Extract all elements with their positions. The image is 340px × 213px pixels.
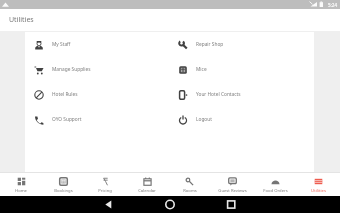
staticText: Your Hotel Contacts: [196, 91, 241, 98]
button[interactable]: Manage Supplies: [25, 57, 169, 82]
button[interactable]: Mice: [169, 57, 314, 82]
button[interactable]: Home: [0, 173, 42, 196]
staticText: Bookings: [54, 188, 73, 194]
button[interactable]: Repair Shop: [169, 32, 314, 57]
button[interactable]: Logout: [169, 107, 314, 132]
button[interactable]: Guest Reviews: [211, 173, 254, 196]
button[interactable]: Your Hotel Contacts: [169, 82, 314, 107]
button[interactable]: Utilities: [297, 173, 340, 196]
staticText: Pricing: [98, 188, 112, 194]
staticText: Manage Supplies: [52, 66, 91, 73]
staticText: Home: [15, 188, 27, 194]
staticText: Utilities: [311, 188, 326, 194]
staticText: Guest Reviews: [218, 188, 247, 194]
staticText: My Staff: [52, 41, 71, 48]
button[interactable]: Bookings: [42, 173, 84, 196]
staticText: 5:24: [328, 2, 338, 8]
button[interactable]: Hotel Rules: [25, 82, 169, 107]
button[interactable]: Food Orders: [254, 173, 297, 196]
button[interactable]: OYO Support: [25, 107, 169, 132]
staticText: OYO Support: [52, 116, 82, 123]
staticText: Rooms: [183, 188, 197, 194]
button[interactable]: Pricing: [84, 173, 126, 196]
button[interactable]: Calendar: [126, 173, 168, 196]
staticText: Hotel Rules: [52, 91, 78, 98]
staticText: Logout: [196, 116, 212, 123]
staticText: Utilities: [9, 15, 34, 25]
button[interactable]: My Staff: [25, 32, 169, 57]
staticText: Repair Shop: [196, 41, 224, 48]
staticText: Mice: [196, 66, 207, 73]
staticText: Calendar: [138, 188, 156, 194]
staticText: Food Orders: [263, 188, 288, 194]
button[interactable]: Rooms: [168, 173, 211, 196]
